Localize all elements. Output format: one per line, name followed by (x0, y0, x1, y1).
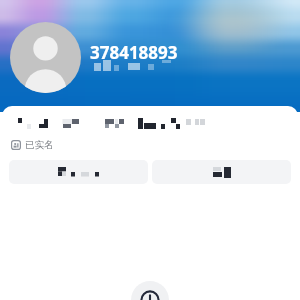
button[interactable]: 已实名 (11, 138, 54, 152)
button[interactable]: Power off (131, 281, 169, 300)
staticText: 已实名 (25, 139, 54, 151)
button[interactable]: Profile picture (10, 22, 81, 93)
button[interactable] (152, 160, 291, 184)
button[interactable] (9, 160, 148, 184)
staticText: 378418893 (90, 41, 178, 64)
